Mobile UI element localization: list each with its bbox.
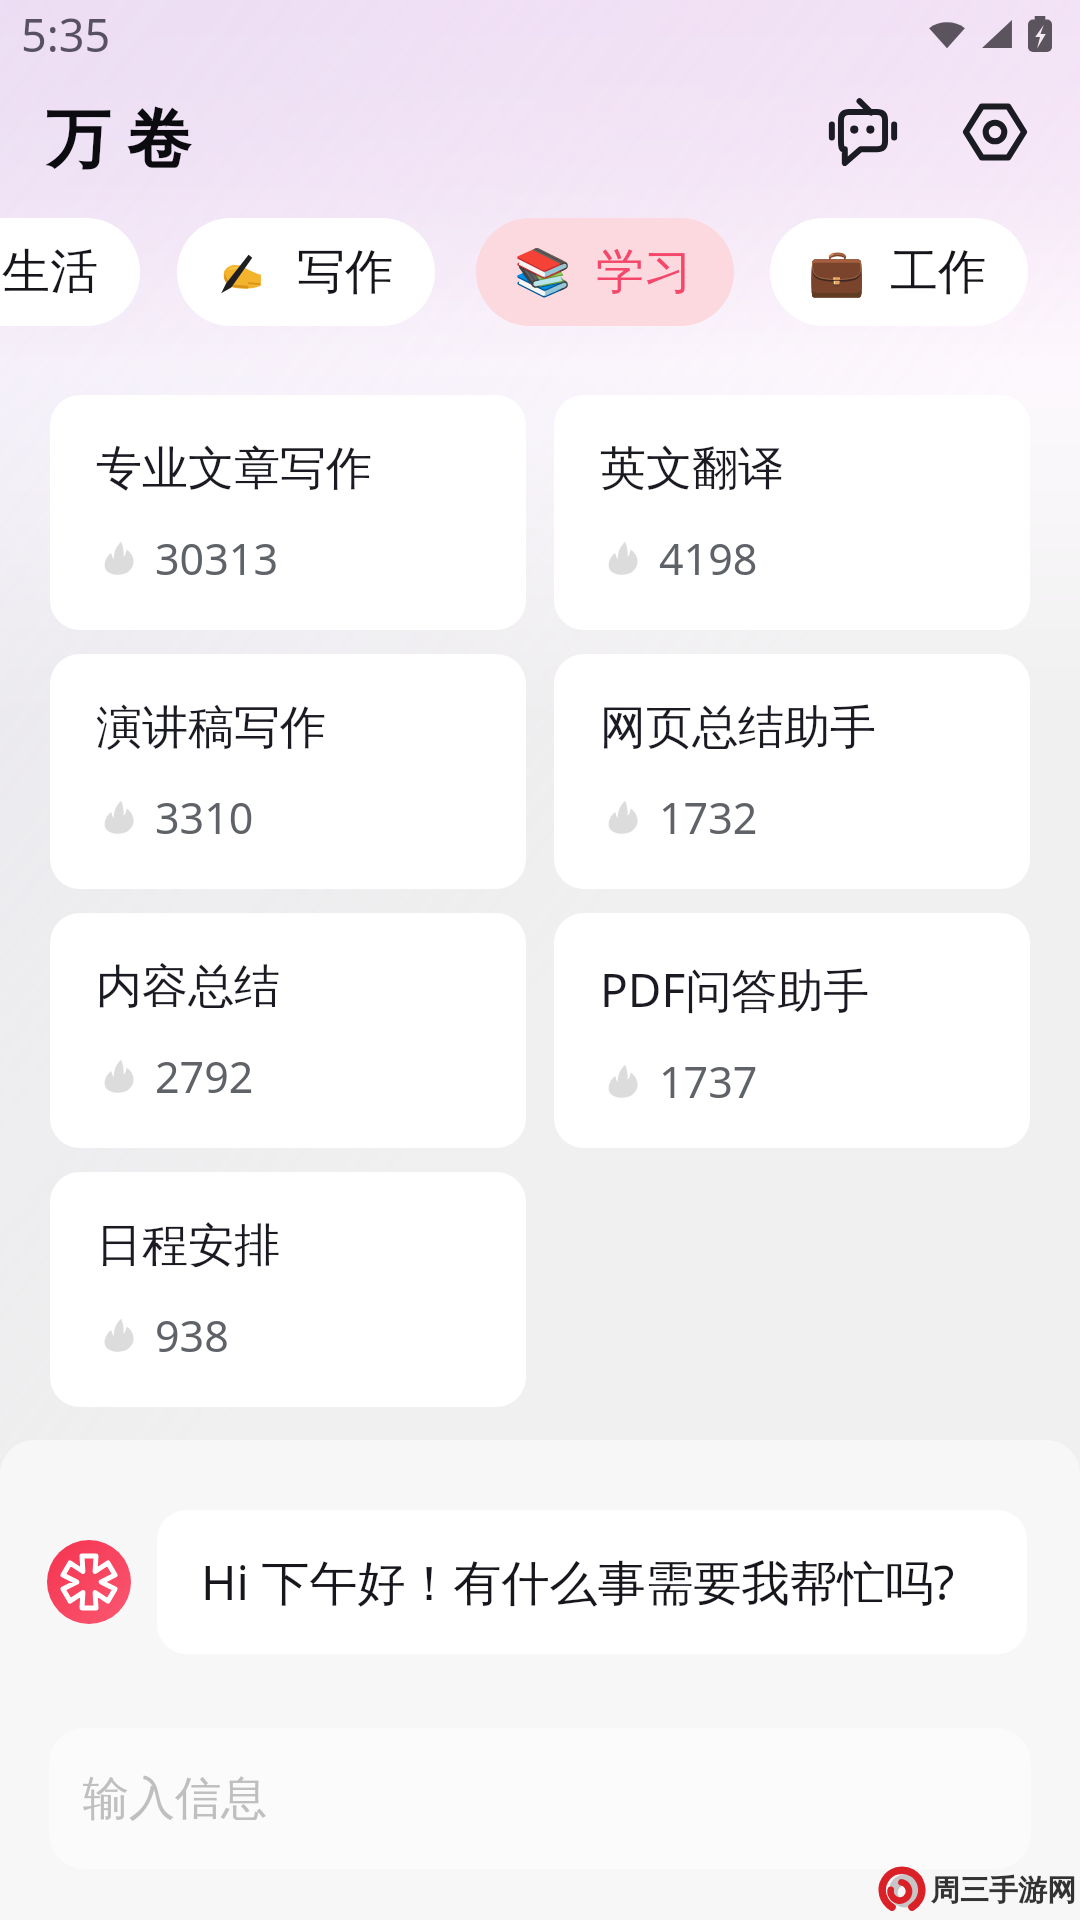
staticText: 938	[155, 1306, 229, 1365]
staticText: 专业文章写作	[96, 440, 372, 498]
staticText: 30313	[155, 529, 278, 588]
staticText: 1737	[659, 1052, 758, 1111]
button[interactable]: 写作	[177, 218, 435, 326]
staticText: 💼	[808, 245, 864, 299]
staticText: 万 卷	[46, 93, 191, 180]
button[interactable]: 英文翻译	[554, 395, 1030, 630]
staticText: 写作	[297, 242, 393, 302]
button[interactable]: 演讲稿写作	[50, 654, 526, 889]
button[interactable]: 🍊	[0, 218, 140, 326]
staticText: 内容总结	[96, 958, 280, 1016]
button[interactable]: PDF问答助手	[554, 913, 1030, 1148]
staticText: 周三手游网	[931, 1872, 1076, 1909]
staticText: 5:35	[21, 4, 111, 65]
staticText: 日程安排	[96, 1217, 280, 1275]
button[interactable]: Settings	[951, 88, 1039, 176]
button[interactable]: 专业文章写作	[50, 395, 526, 630]
staticText: 工作	[890, 242, 986, 302]
staticText: PDF问答助手	[600, 958, 870, 1021]
button[interactable]: 日程安排	[50, 1172, 526, 1407]
button[interactable]: 网页总结助手	[554, 654, 1030, 889]
button[interactable]: AI assistant	[819, 88, 907, 176]
staticText: 4198	[659, 529, 758, 588]
staticText: 输入信息	[83, 1770, 267, 1828]
staticText: 1732	[659, 788, 758, 847]
button[interactable]: 💼	[770, 218, 1028, 326]
staticText: 3310	[155, 788, 254, 847]
staticText: 生活	[2, 242, 98, 302]
button[interactable]: 📚	[476, 218, 734, 326]
staticText: 2792	[155, 1047, 254, 1106]
button[interactable]: 输入信息	[49, 1728, 1031, 1869]
staticText: 英文翻译	[600, 440, 784, 498]
staticText: 演讲稿写作	[96, 699, 326, 757]
staticText: Hi 下午好！有什么事需要我帮忙吗?	[201, 1549, 955, 1615]
staticText: 📚	[514, 245, 570, 299]
button[interactable]: 内容总结	[50, 913, 526, 1148]
staticText: 网页总结助手	[600, 699, 876, 757]
staticText: 学习	[596, 242, 692, 302]
